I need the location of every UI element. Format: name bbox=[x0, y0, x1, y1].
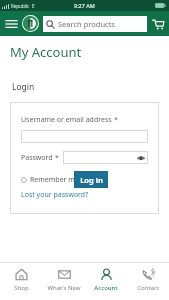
button[interactable]: Remember me bbox=[21, 175, 79, 185]
staticText: Password bbox=[21, 153, 53, 163]
staticText: Contact bbox=[137, 284, 159, 292]
staticText: Username or email address bbox=[21, 115, 112, 125]
staticText: * bbox=[114, 115, 118, 125]
staticText: Remember me bbox=[30, 175, 79, 185]
staticText: Log in bbox=[80, 175, 103, 185]
staticText: Login bbox=[12, 81, 35, 93]
button[interactable]: Contact bbox=[127, 263, 169, 300]
button[interactable] bbox=[21, 130, 148, 143]
button[interactable]: Shop bbox=[0, 263, 43, 300]
button[interactable]: Home logo bbox=[22, 15, 39, 32]
button[interactable]: Log in bbox=[74, 171, 108, 188]
staticText: My Account bbox=[10, 43, 82, 61]
staticText: * bbox=[55, 153, 59, 163]
staticText: Republic bbox=[11, 3, 30, 9]
staticText: Shop bbox=[14, 284, 29, 292]
button[interactable]: Show password bbox=[63, 151, 148, 164]
button[interactable]: Open menu bbox=[0, 11, 22, 36]
button[interactable]: Lost your password? bbox=[21, 190, 89, 200]
staticText: Search products bbox=[58, 19, 115, 29]
staticText: Lost your password? bbox=[21, 190, 89, 200]
button[interactable]: Shopping cart bbox=[147, 11, 168, 36]
button[interactable]: Account bbox=[85, 263, 127, 300]
button[interactable]: What's New bbox=[43, 263, 85, 300]
button[interactable]: Show password bbox=[136, 153, 145, 162]
staticText: E bbox=[32, 3, 35, 9]
button[interactable]: Search products bbox=[43, 16, 147, 32]
staticText: Account bbox=[94, 284, 118, 292]
staticText: What's New bbox=[47, 284, 81, 292]
staticText: 9:27 AM bbox=[74, 2, 95, 9]
